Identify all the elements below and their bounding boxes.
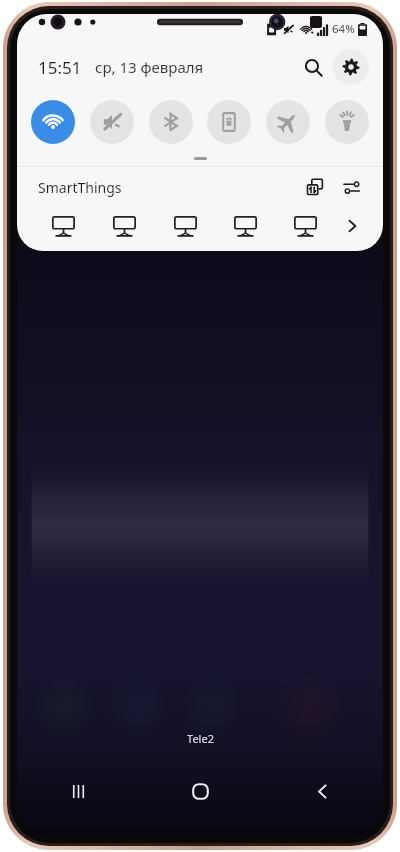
button[interactable]: Home (139, 768, 261, 814)
button[interactable]: Search (295, 49, 331, 85)
button[interactable]: More devices (335, 209, 369, 243)
button[interactable]: SmartThings settings (337, 173, 365, 201)
button[interactable]: TV device (33, 209, 94, 243)
button[interactable]: Wi-Fi (31, 100, 75, 144)
button[interactable]: Flashlight (325, 100, 369, 144)
button[interactable]: TV device (275, 209, 335, 243)
button[interactable]: Sound off (90, 100, 134, 144)
button[interactable]: Collapse quick settings (17, 150, 383, 166)
button[interactable]: Back (261, 768, 383, 814)
button[interactable]: Auto rotate lock (207, 100, 251, 144)
button[interactable]: TV device (94, 209, 155, 243)
button[interactable]: Settings (333, 49, 369, 85)
button[interactable]: Recent apps (17, 768, 139, 814)
button[interactable]: SmartThings (38, 178, 122, 197)
staticText: Tele2 (187, 731, 214, 746)
staticText: 15:51 (38, 56, 82, 79)
button[interactable]: Transfer media (301, 173, 329, 201)
button[interactable]: TV device (215, 209, 275, 243)
staticText: 64% (332, 21, 355, 37)
button[interactable]: TV device (155, 209, 215, 243)
button[interactable]: Airplane mode (266, 100, 310, 144)
button[interactable]: Bluetooth (149, 100, 193, 144)
staticText: ср, 13 февраля (95, 57, 204, 77)
